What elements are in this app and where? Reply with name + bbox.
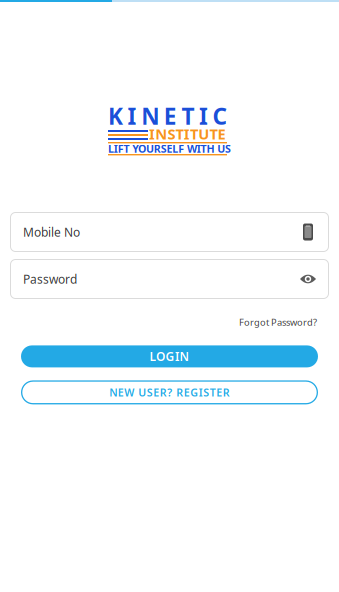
staticText: NEW USER? REGISTER: [109, 385, 230, 399]
button[interactable]: Password: [10, 259, 329, 299]
button[interactable]: Mobile No: [10, 212, 329, 252]
staticText: Mobile No: [23, 224, 80, 240]
staticText: KINETIC: [108, 101, 228, 131]
staticText: Password: [23, 271, 77, 287]
staticText: INSTITUTE: [149, 124, 226, 143]
button[interactable]: NEW USER? REGISTER: [21, 380, 318, 404]
button[interactable]: Forgot Password?: [239, 316, 317, 328]
button[interactable]: LOGIN: [21, 345, 318, 367]
staticText: LOGIN: [149, 348, 189, 364]
staticText: Forgot Password?: [239, 316, 317, 328]
staticText: LIFT YOURSELF WITH US: [108, 141, 231, 156]
